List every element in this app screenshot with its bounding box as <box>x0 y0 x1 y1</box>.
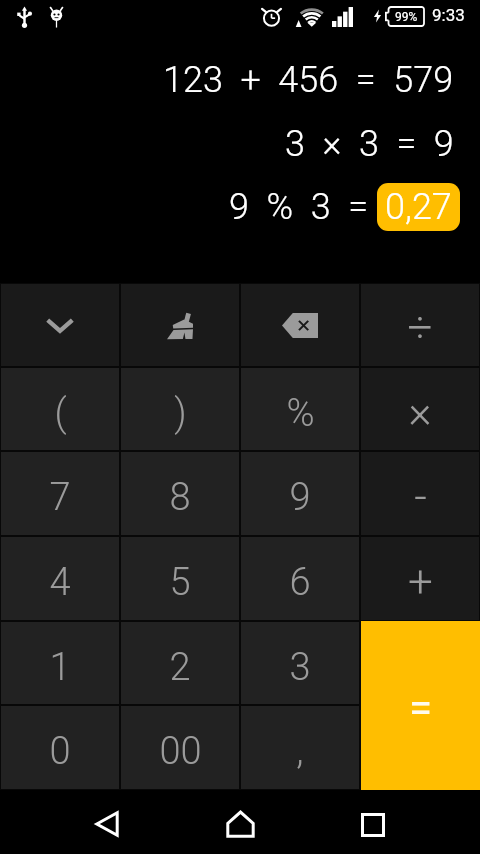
button[interactable]: 1 <box>1 622 119 704</box>
staticText: = <box>409 683 433 732</box>
staticText: 4 <box>49 560 71 605</box>
button[interactable]: Back <box>70 790 144 854</box>
staticText: - <box>414 471 427 523</box>
button[interactable]: % <box>241 368 359 450</box>
staticText: 9 <box>289 475 311 520</box>
staticText: 00 <box>159 729 202 774</box>
button[interactable]: Recents <box>336 790 410 854</box>
staticText: 9:33 <box>432 5 465 25</box>
staticText: 9 % 3 = <box>229 186 377 228</box>
button[interactable]: 00 <box>121 706 239 789</box>
button[interactable]: 5 <box>121 537 239 620</box>
button[interactable]: 2 <box>121 622 239 704</box>
staticText: 1 <box>49 645 71 690</box>
button[interactable]: × <box>361 368 479 450</box>
staticText: % <box>286 391 315 436</box>
staticText: ( <box>54 391 67 436</box>
button[interactable]: 8 <box>121 452 239 535</box>
button[interactable]: ) <box>121 368 239 450</box>
staticText: ÷ <box>407 302 433 354</box>
staticText: 99% <box>395 10 418 24</box>
staticText: 6 <box>289 560 311 605</box>
staticText: 3 × 3 = 9 <box>285 123 454 165</box>
button[interactable]: 6 <box>241 537 359 620</box>
button[interactable]: 4 <box>1 537 119 620</box>
button[interactable]: Home <box>203 790 277 854</box>
button[interactable]: ÷ <box>361 284 479 366</box>
button[interactable]: ( <box>1 368 119 450</box>
staticText: 3 <box>289 645 311 690</box>
button[interactable]: = <box>361 621 480 790</box>
staticText: 0,27 <box>385 186 452 228</box>
button[interactable]: + <box>361 537 479 620</box>
button[interactable]: , <box>241 706 359 789</box>
button[interactable]: - <box>361 452 479 535</box>
button[interactable]: Clear <box>121 284 239 366</box>
staticText: 5 <box>169 560 191 605</box>
button[interactable]: Backspace <box>241 284 359 366</box>
button[interactable]: 7 <box>1 452 119 535</box>
staticText: + <box>408 556 433 608</box>
staticText: , <box>296 729 304 774</box>
button[interactable]: Collapse <box>1 284 119 366</box>
staticText: 2 <box>169 645 191 690</box>
staticText: 123 + 456 = 579 <box>163 59 454 101</box>
staticText: 0 <box>49 729 71 774</box>
staticText: × <box>408 386 432 438</box>
button[interactable]: 9 <box>241 452 359 535</box>
staticText: 7 <box>49 475 71 520</box>
button[interactable]: 0 <box>1 706 119 789</box>
button[interactable]: 3 <box>241 622 359 704</box>
staticText: ) <box>174 391 187 436</box>
staticText: 8 <box>169 475 191 520</box>
